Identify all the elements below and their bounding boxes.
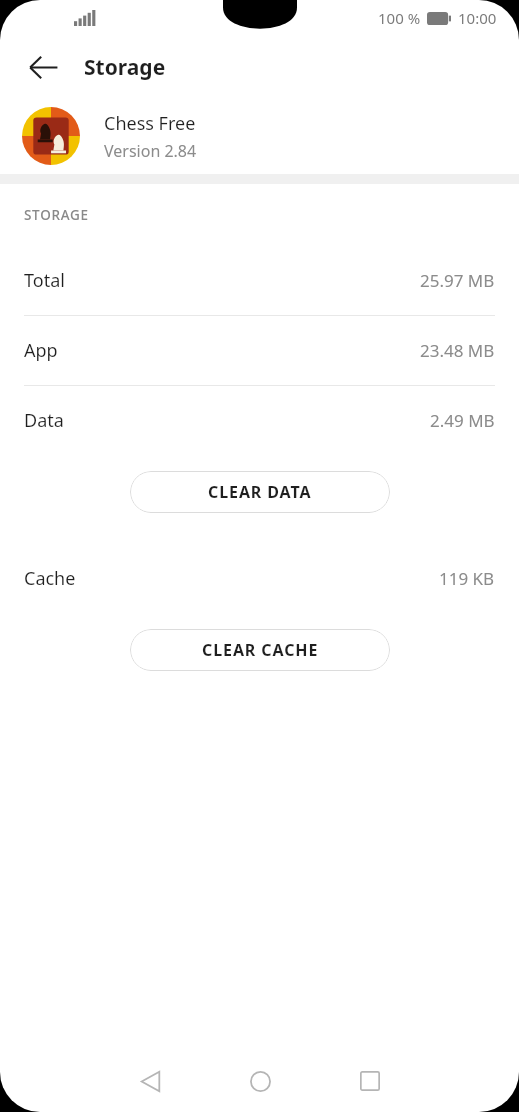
button[interactable]: CLEAR CACHE bbox=[130, 629, 390, 671]
button[interactable]: Home bbox=[229, 1050, 291, 1112]
staticText: Cache bbox=[24, 566, 76, 591]
staticText: 100 % bbox=[378, 8, 421, 28]
staticText: 10:00 bbox=[458, 8, 497, 28]
staticText: Storage bbox=[84, 53, 166, 82]
staticText: Chess Free bbox=[104, 111, 196, 136]
staticText: App bbox=[24, 338, 58, 363]
staticText: STORAGE bbox=[24, 206, 89, 224]
staticText: CLEAR CACHE bbox=[202, 639, 319, 661]
button[interactable]: Chess Free bbox=[0, 98, 519, 174]
staticText: 25.97 MB bbox=[420, 269, 495, 292]
staticText: 23.48 MB bbox=[420, 339, 495, 362]
staticText: 2.49 MB bbox=[430, 409, 495, 432]
staticText: Total bbox=[24, 268, 65, 293]
button[interactable]: Back bbox=[14, 38, 72, 96]
staticText: CLEAR DATA bbox=[208, 481, 312, 503]
staticText: Data bbox=[24, 408, 64, 433]
button[interactable]: Data bbox=[0, 386, 519, 455]
button[interactable]: Total bbox=[0, 246, 519, 315]
staticText: Version 2.84 bbox=[104, 140, 197, 162]
button[interactable]: Cache bbox=[0, 544, 519, 613]
button[interactable]: CLEAR DATA bbox=[130, 471, 390, 513]
button[interactable]: Recent apps bbox=[339, 1050, 401, 1112]
staticText: 119 KB bbox=[439, 567, 495, 590]
button[interactable]: Back bbox=[119, 1050, 181, 1112]
button[interactable]: App bbox=[0, 316, 519, 385]
